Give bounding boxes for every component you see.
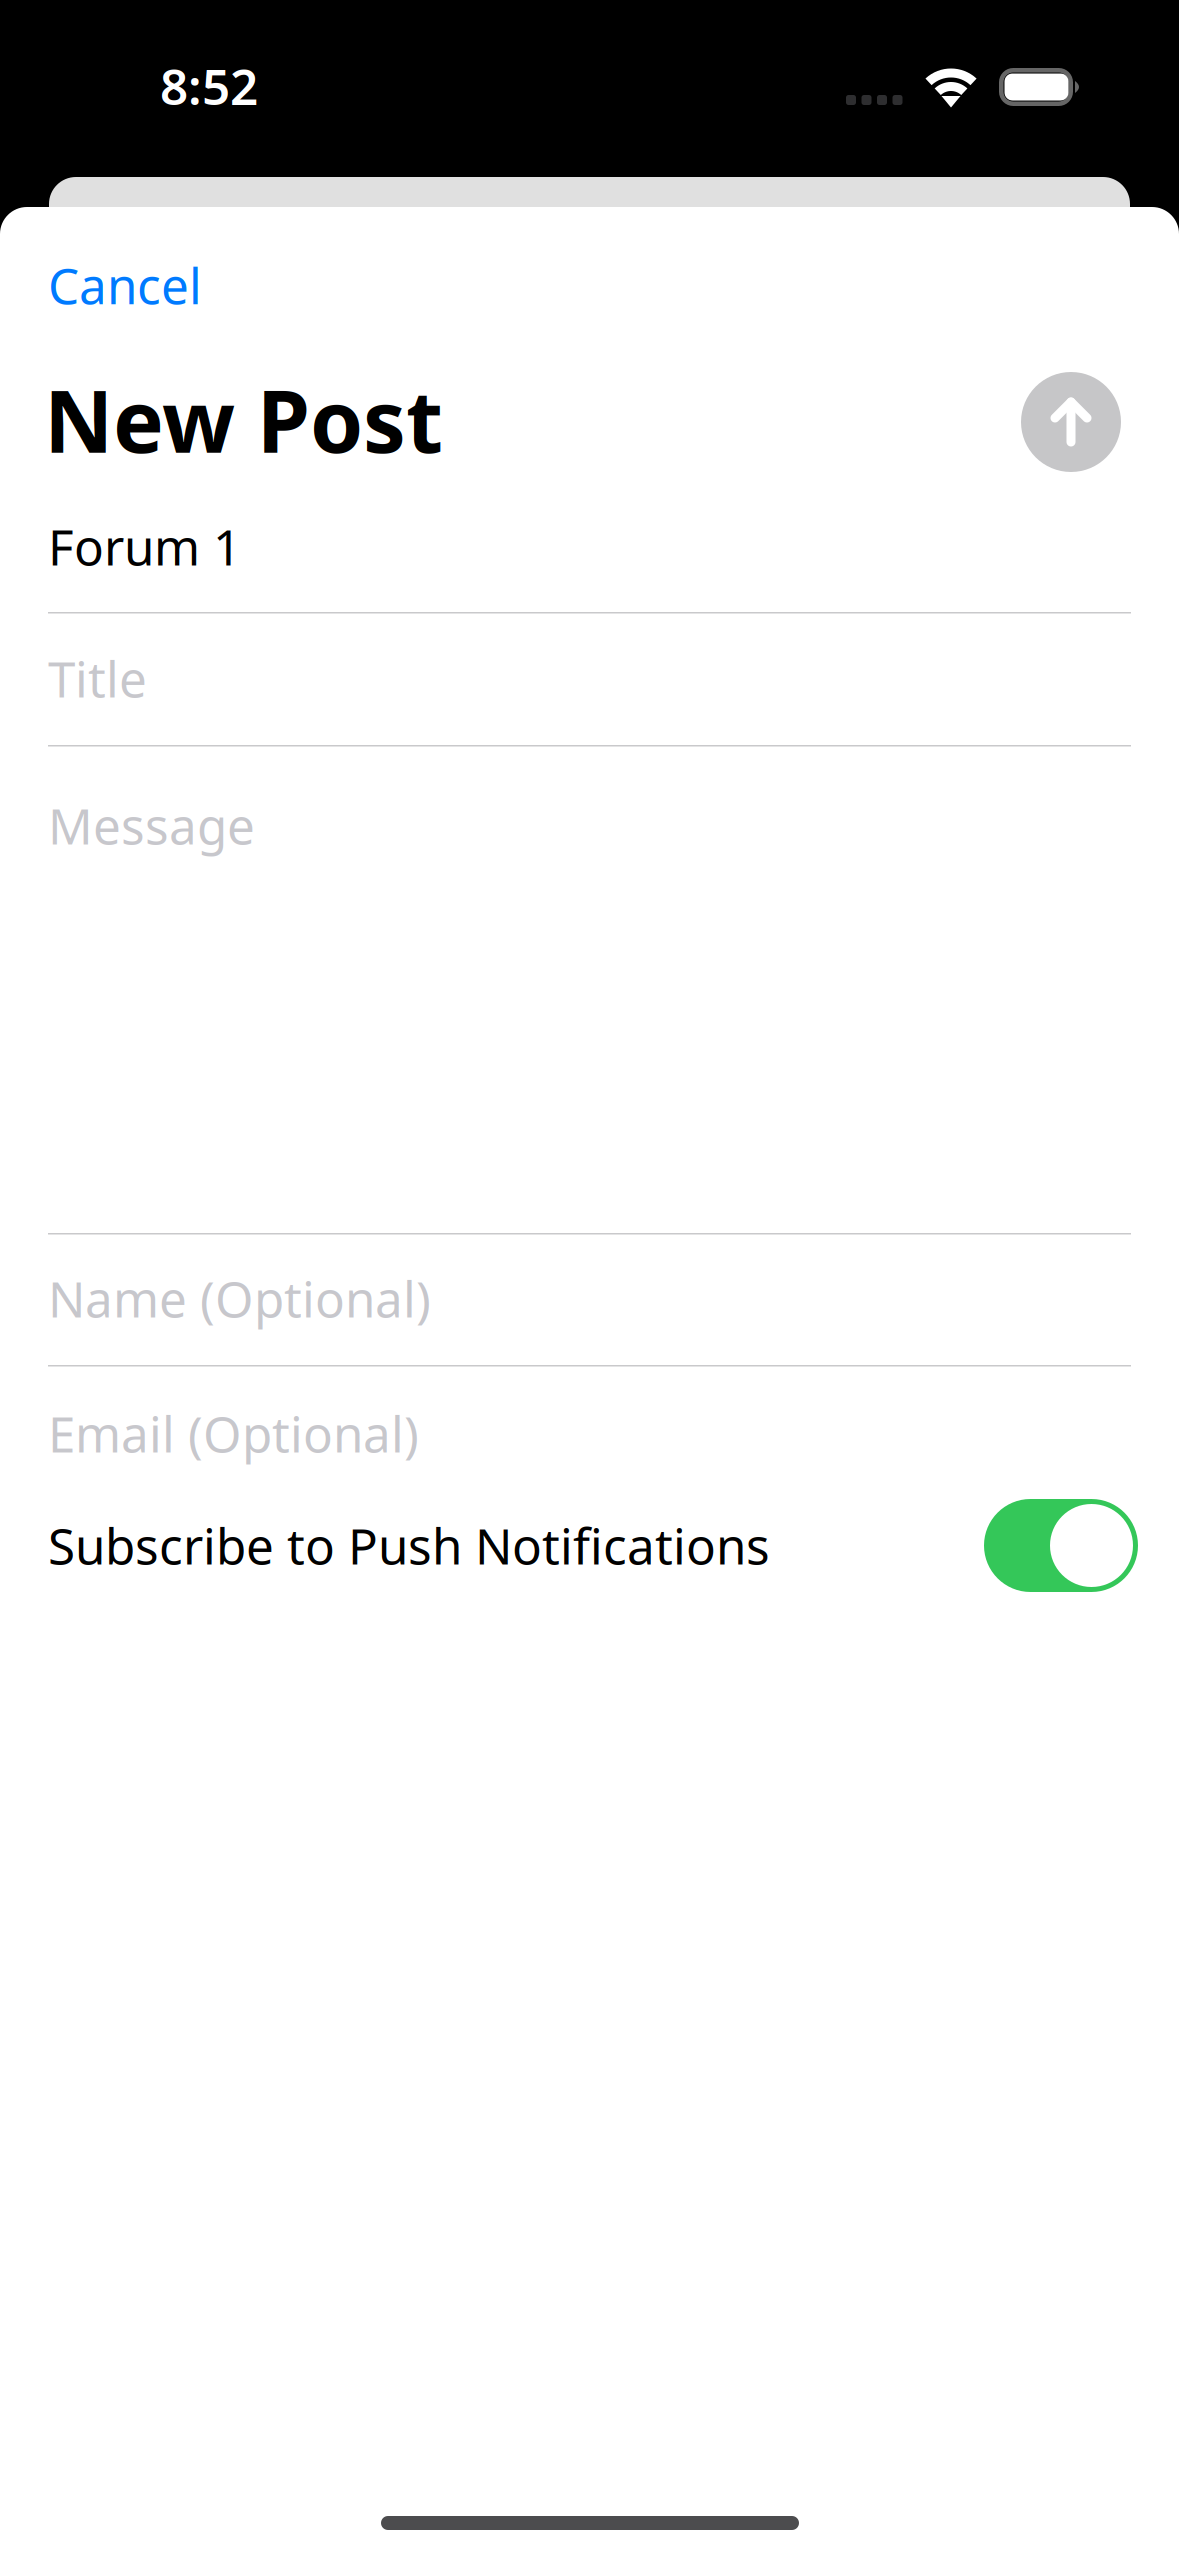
button[interactable]: Name (Optional) (48, 1234, 1131, 1364)
button[interactable]: Title (48, 613, 1131, 744)
staticText: New Post (44, 363, 443, 476)
button[interactable]: Message (48, 746, 1131, 1232)
button[interactable]: Subscribe to Push Notifications (984, 1499, 1138, 1592)
staticText: Subscribe to Push Notifications (48, 1512, 770, 1578)
button[interactable]: Post (1021, 372, 1121, 472)
staticText: Title (48, 645, 147, 711)
button[interactable]: Email (Optional) (48, 1366, 1131, 1496)
staticText: 8:52 (160, 53, 258, 118)
staticText: Cancel (48, 252, 202, 318)
staticText: Message (48, 792, 255, 858)
staticText: Name (Optional) (48, 1265, 431, 1331)
staticText: Forum 1 (48, 513, 241, 579)
button[interactable]: Forum 1 (48, 480, 1131, 611)
staticText: Email (Optional) (48, 1400, 419, 1466)
button[interactable]: Cancel (48, 240, 248, 330)
